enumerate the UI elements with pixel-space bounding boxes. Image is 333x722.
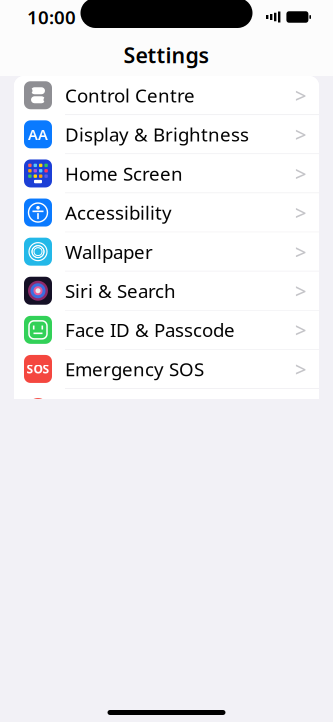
staticText: >	[295, 238, 306, 265]
staticText: Settings	[123, 41, 209, 69]
button[interactable]: SOS	[14, 350, 319, 389]
staticText: Siri & Search	[65, 278, 176, 303]
staticText: SOS	[26, 361, 49, 377]
button[interactable]: Home Screen	[14, 154, 319, 193]
staticText: >	[295, 395, 306, 421]
staticText: >	[295, 199, 306, 226]
staticText: Wallpaper	[65, 239, 153, 264]
staticText: Accessibility	[65, 200, 172, 225]
staticText: Home Screen	[65, 161, 183, 186]
button[interactable]: ✉	[14, 686, 319, 722]
staticText: Display & Brightness	[65, 122, 249, 147]
staticText: >	[295, 356, 306, 382]
staticText: Control Centre	[65, 83, 195, 108]
staticText: >	[295, 82, 306, 109]
staticText: Face ID & Passcode	[65, 317, 235, 342]
button[interactable]: Face ID & Passcode	[14, 311, 319, 350]
staticText: Emergency SOS	[65, 357, 204, 381]
staticText: 10:00	[27, 5, 76, 29]
button[interactable]: Siri & Search	[14, 271, 319, 311]
button[interactable]: Accessibility	[14, 193, 319, 232]
staticText: >	[295, 317, 306, 343]
staticText: >	[295, 160, 306, 187]
staticText: >	[295, 121, 306, 148]
staticText: Exposure Notifications	[65, 396, 262, 420]
button[interactable]: Wallpaper	[14, 232, 319, 271]
button[interactable]: Exposure Notifications	[14, 389, 319, 428]
staticText: >	[295, 277, 306, 304]
button[interactable]: Control Centre	[14, 76, 319, 115]
staticText: AA	[28, 125, 48, 144]
button[interactable]: AA	[14, 115, 319, 154]
